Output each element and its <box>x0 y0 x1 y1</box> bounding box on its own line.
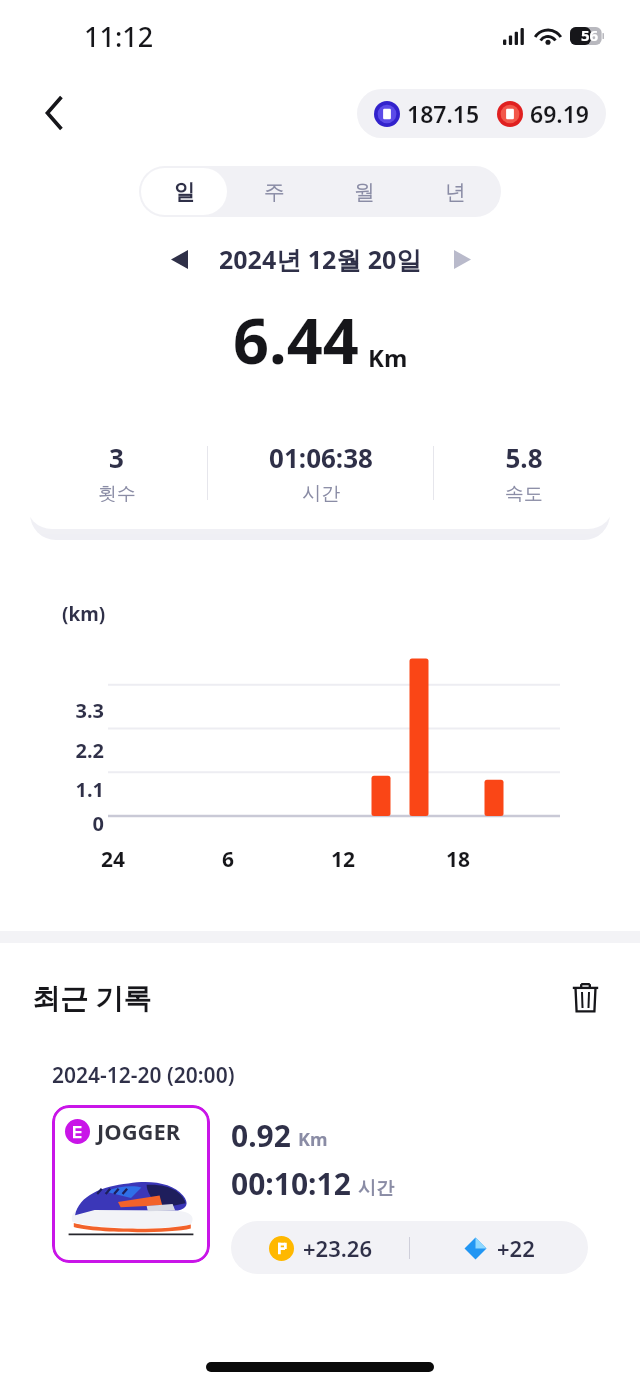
staticText: 00:10:12 <box>231 1163 351 1204</box>
button[interactable]: Back <box>26 84 84 142</box>
button[interactable]: Previous day <box>157 239 201 279</box>
button[interactable]: +23.26 <box>231 1221 588 1274</box>
button[interactable]: 년 <box>412 168 499 215</box>
button[interactable]: 187.15 <box>357 89 606 138</box>
staticText: 18 <box>432 845 484 874</box>
button[interactable]: Delete records <box>562 975 608 1019</box>
staticText: 0 <box>58 810 104 837</box>
staticText: 187.15 <box>407 98 480 129</box>
staticText: Km <box>368 341 408 374</box>
staticText: 2024년 12월 20일 <box>219 242 422 276</box>
button[interactable]: 월 <box>321 168 408 215</box>
staticText: 최근 기록 <box>32 978 152 1016</box>
staticText: 횟수 <box>98 482 136 506</box>
staticText: 2.2 <box>58 737 104 764</box>
staticText: 일 <box>174 179 195 205</box>
staticText: 6.44 <box>233 297 359 383</box>
staticText: 시간 <box>302 482 340 506</box>
staticText: 24 <box>87 845 139 874</box>
staticText: 11:12 <box>84 18 154 55</box>
staticText: 속도 <box>505 482 543 506</box>
staticText: 6 <box>202 845 254 874</box>
button[interactable]: 2024-12-20 (20:00) <box>33 1041 607 1274</box>
staticText: +23.26 <box>303 1233 372 1263</box>
staticText: 3 <box>109 440 124 475</box>
staticText: 2024-12-20 (20:00) <box>52 1061 235 1090</box>
staticText: 56 <box>581 25 599 45</box>
staticText: 3.3 <box>58 697 104 724</box>
button[interactable]: 일 <box>141 168 227 215</box>
staticText: 01:06:38 <box>269 440 373 475</box>
staticText: 1.1 <box>58 776 104 803</box>
staticText: 69.19 <box>530 98 589 129</box>
staticText: 0.92 <box>231 1115 291 1156</box>
staticText: JOGGER <box>97 1116 181 1146</box>
staticText: 12 <box>317 845 369 874</box>
staticText: 년 <box>445 179 466 205</box>
staticText: 월 <box>354 179 375 205</box>
staticText: +22 <box>497 1233 535 1263</box>
staticText: (km) <box>62 601 106 627</box>
button[interactable]: 주 <box>231 168 317 215</box>
staticText: Km <box>298 1127 328 1152</box>
staticText: 시간 <box>358 1177 394 1200</box>
staticText: 주 <box>264 179 285 205</box>
button[interactable]: Next day <box>440 239 484 279</box>
button[interactable]: 3 <box>26 417 614 529</box>
staticText: 5.8 <box>505 440 543 475</box>
